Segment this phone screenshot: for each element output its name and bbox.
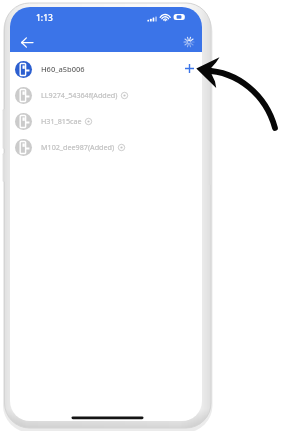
button[interactable]: H31_815cae — [10, 108, 202, 134]
staticText: M102_dee987(Added) — [41, 142, 115, 152]
staticText: 1:13 — [36, 12, 53, 24]
staticText: H31_815cae — [41, 116, 82, 126]
staticText: LL9274_54364f(Added) — [41, 90, 118, 100]
button[interactable]: Loading — [179, 32, 199, 52]
button[interactable]: M102_dee987(Added) — [10, 134, 202, 160]
button[interactable]: LL9274_54364f(Added) — [10, 82, 202, 108]
button[interactable]: Back — [15, 30, 39, 54]
staticText: H60_a5b006 — [41, 64, 85, 74]
button[interactable]: H60_a5b006 — [10, 56, 202, 82]
button[interactable]: Add device — [181, 60, 197, 76]
